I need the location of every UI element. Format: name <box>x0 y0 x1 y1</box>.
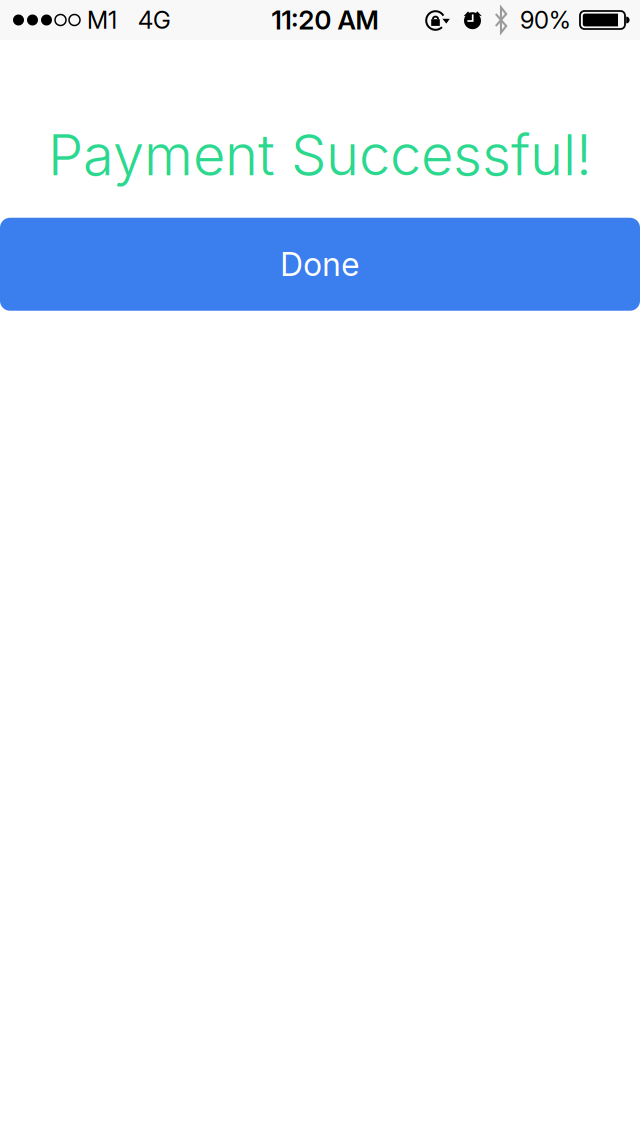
staticText: 90% <box>520 5 571 34</box>
staticText: 4G <box>138 5 171 34</box>
staticText: M1 <box>87 5 117 34</box>
button[interactable]: Done <box>0 218 640 311</box>
staticText: Payment Successful! <box>48 121 592 189</box>
staticText: Done <box>280 245 360 284</box>
staticText: 11:20 AM <box>271 4 378 36</box>
